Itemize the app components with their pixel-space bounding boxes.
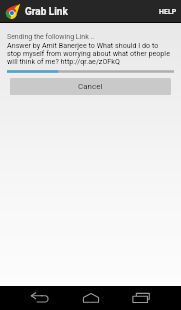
staticText: Grab Link bbox=[25, 6, 68, 18]
staticText: Cancel bbox=[78, 82, 103, 91]
button[interactable]: HELP bbox=[149, 0, 181, 23]
staticText: HELP bbox=[159, 8, 177, 16]
staticText: Sending the following Link .. bbox=[7, 33, 95, 41]
button[interactable]: Back bbox=[22, 286, 58, 310]
button[interactable]: Home bbox=[73, 286, 109, 310]
staticText: Answer by Amit Banerjee to What should I… bbox=[7, 41, 174, 65]
button[interactable]: Recent apps bbox=[123, 286, 159, 310]
button[interactable]: Cancel bbox=[10, 78, 171, 95]
